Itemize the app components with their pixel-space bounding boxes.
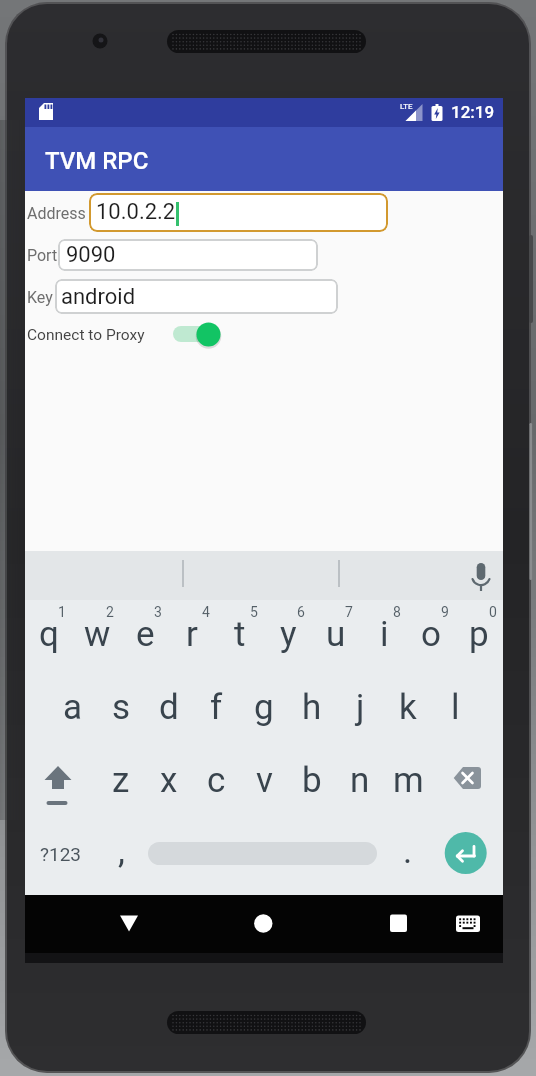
- button[interactable]: .: [384, 815, 432, 888]
- button[interactable]: z: [97, 744, 145, 817]
- button[interactable]: [444, 899, 492, 947]
- button[interactable]: v: [240, 744, 288, 817]
- staticText: Address: [27, 204, 86, 223]
- button[interactable]: u: [312, 598, 360, 671]
- button[interactable]: g: [240, 671, 288, 744]
- staticText: 3: [154, 604, 162, 620]
- staticText: 0: [489, 604, 497, 620]
- staticText: TVM RPC: [45, 147, 149, 175]
- staticText: w: [84, 614, 111, 655]
- button[interactable]: q: [25, 598, 73, 671]
- button[interactable]: [105, 899, 153, 947]
- staticText: n: [350, 760, 370, 801]
- staticText: ,: [118, 831, 125, 872]
- button[interactable]: d: [145, 671, 193, 744]
- button[interactable]: [431, 817, 503, 890]
- staticText: 9090: [66, 242, 116, 268]
- staticText: ?123: [40, 843, 82, 865]
- button[interactable]: l: [431, 671, 479, 744]
- staticText: i: [380, 614, 389, 655]
- staticText: h: [302, 687, 322, 728]
- staticText: p: [469, 614, 489, 655]
- staticText: 2: [106, 604, 114, 620]
- staticText: 4: [202, 604, 210, 620]
- button[interactable]: [239, 899, 287, 947]
- staticText: t: [234, 614, 246, 655]
- button[interactable]: t: [216, 598, 264, 671]
- button[interactable]: s: [97, 671, 145, 744]
- staticText: 1: [58, 604, 66, 620]
- staticText: 12:19: [451, 102, 495, 122]
- staticText: y: [280, 614, 297, 655]
- button[interactable]: i: [360, 598, 408, 671]
- staticText: z: [112, 760, 130, 801]
- staticText: o: [421, 614, 441, 655]
- button[interactable]: n: [336, 744, 384, 817]
- button[interactable]: o: [407, 598, 455, 671]
- staticText: 10.0.2.2: [96, 199, 176, 225]
- staticText: c: [207, 760, 226, 801]
- button[interactable]: y: [264, 598, 312, 671]
- staticText: LTE: [400, 102, 413, 111]
- staticText: 7: [345, 604, 353, 620]
- staticText: 5: [250, 604, 258, 620]
- staticText: d: [159, 687, 179, 728]
- button[interactable]: ?123: [25, 817, 97, 890]
- button[interactable]: f: [192, 671, 240, 744]
- staticText: Port: [27, 246, 58, 265]
- staticText: k: [399, 687, 417, 728]
- button[interactable]: [89, 193, 388, 232]
- staticText: q: [39, 614, 59, 655]
- button[interactable]: w: [73, 598, 121, 671]
- staticText: j: [356, 687, 365, 728]
- button[interactable]: m: [384, 744, 432, 817]
- staticText: .: [403, 831, 413, 872]
- staticText: Connect to Proxy: [27, 326, 145, 344]
- staticText: r: [186, 614, 198, 655]
- staticText: 6: [297, 604, 305, 620]
- button[interactable]: [457, 551, 505, 600]
- button[interactable]: r: [168, 598, 216, 671]
- staticText: android: [61, 284, 136, 310]
- button[interactable]: [25, 744, 97, 817]
- button[interactable]: [431, 744, 503, 817]
- button[interactable]: j: [336, 671, 384, 744]
- staticText: b: [302, 760, 322, 801]
- button[interactable]: [374, 899, 422, 947]
- staticText: s: [112, 687, 131, 728]
- staticText: f: [210, 687, 223, 728]
- staticText: g: [254, 687, 274, 728]
- staticText: a: [63, 687, 83, 728]
- staticText: e: [136, 614, 155, 655]
- staticText: 9: [441, 604, 449, 620]
- button[interactable]: [55, 279, 338, 314]
- staticText: m: [393, 760, 424, 801]
- button[interactable]: p: [455, 598, 503, 671]
- staticText: x: [160, 760, 178, 801]
- button[interactable]: k: [384, 671, 432, 744]
- button[interactable]: [169, 316, 225, 353]
- button[interactable]: a: [49, 671, 97, 744]
- button[interactable]: x: [145, 744, 193, 817]
- button[interactable]: b: [288, 744, 336, 817]
- staticText: Key: [27, 288, 53, 307]
- staticText: 8: [393, 604, 401, 620]
- staticText: u: [326, 614, 346, 655]
- button[interactable]: ,: [97, 815, 145, 888]
- button[interactable]: e: [121, 598, 169, 671]
- button[interactable]: c: [192, 744, 240, 817]
- staticText: v: [256, 760, 273, 801]
- button[interactable]: h: [288, 671, 336, 744]
- staticText: l: [451, 687, 460, 728]
- button[interactable]: [58, 239, 318, 271]
